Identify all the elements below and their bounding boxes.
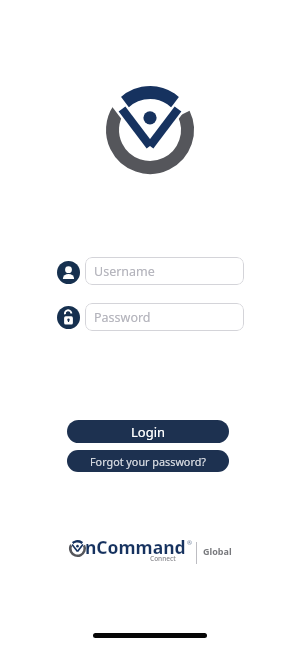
staticText: ® <box>187 539 192 547</box>
staticText: nCommand <box>85 535 186 559</box>
staticText: Password <box>94 309 151 326</box>
button[interactable]: Forgot your password? <box>67 450 229 472</box>
staticText: Connect <box>150 554 176 563</box>
staticText: Global <box>203 545 232 557</box>
button[interactable]: Password <box>85 303 244 331</box>
staticText: Login <box>131 423 166 441</box>
button[interactable]: Username <box>85 257 244 285</box>
staticText: Username <box>94 263 155 280</box>
staticText: Forgot your password? <box>90 454 206 469</box>
button[interactable]: Login <box>67 420 229 443</box>
